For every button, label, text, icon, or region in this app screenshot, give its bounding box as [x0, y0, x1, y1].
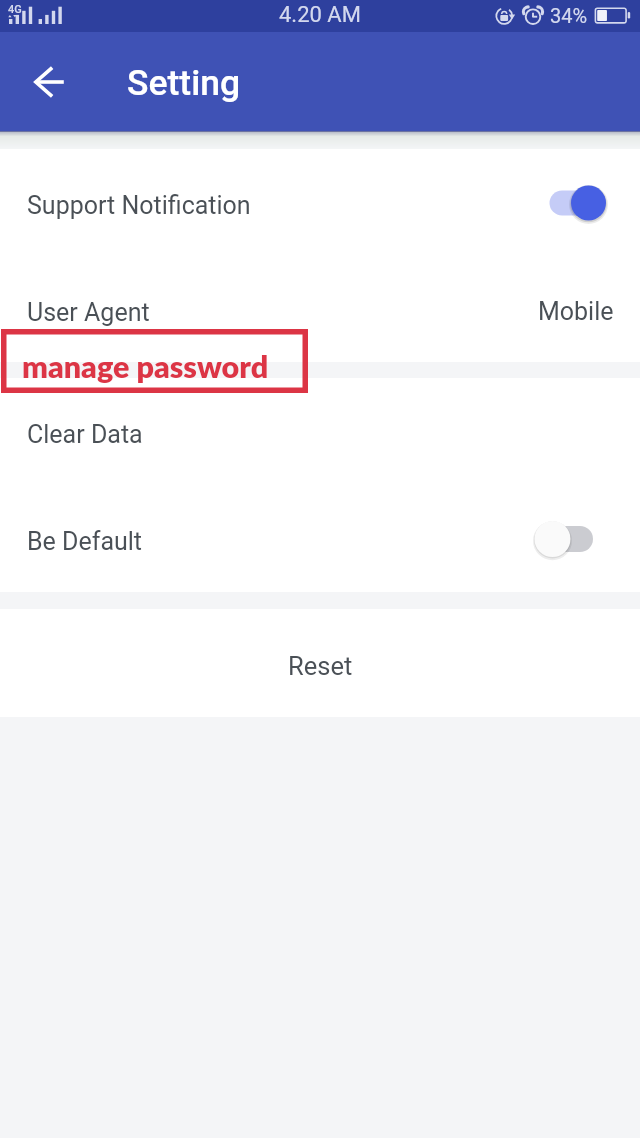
button[interactable]: Support Notification — [0, 149, 640, 256]
staticText: 34% — [550, 4, 588, 27]
staticText: Mobile — [538, 297, 614, 326]
staticText: Clear Data — [27, 420, 143, 449]
staticText: Setting — [127, 62, 241, 104]
staticText: Reset — [288, 651, 353, 681]
button[interactable]: Be Default toggle, off — [544, 517, 614, 561]
staticText: Be Default — [27, 527, 143, 556]
staticText: Support Notification — [27, 191, 251, 220]
staticText: 4G — [8, 3, 22, 16]
button[interactable]: Clear Data — [0, 378, 640, 485]
button[interactable]: Reset — [0, 609, 640, 717]
staticText: User Agent — [27, 298, 150, 327]
button[interactable]: User Agent — [0, 256, 640, 362]
button[interactable]: Be Default — [0, 485, 640, 592]
staticText: 4.20 AM — [279, 2, 361, 28]
button[interactable]: Back — [14, 47, 84, 117]
button[interactable]: Support Notification toggle, on — [544, 181, 614, 225]
staticText: manage password — [22, 348, 269, 385]
